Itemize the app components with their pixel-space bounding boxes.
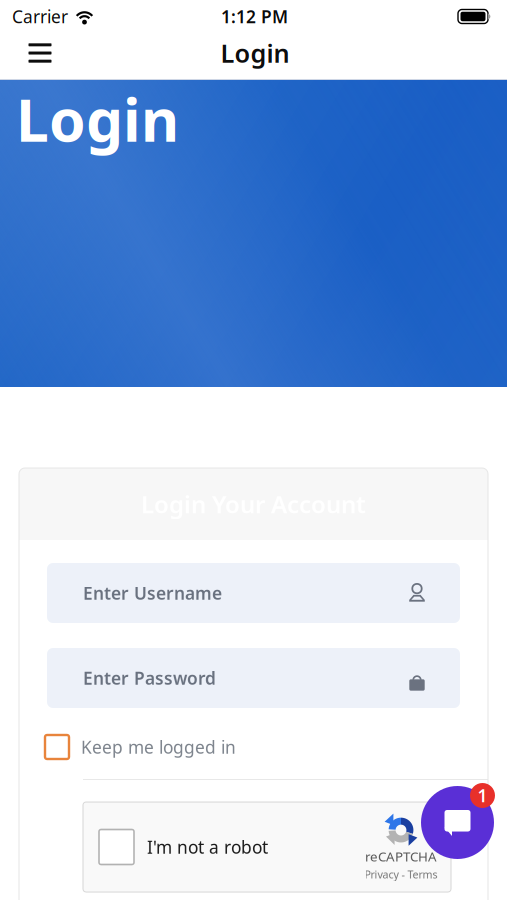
staticText: Privacy - Terms [364, 867, 437, 881]
staticText: reCAPTCHA [365, 848, 437, 865]
button[interactable]: Keep me logged in [45, 735, 236, 759]
staticText: 1:12 PM [221, 5, 288, 28]
staticText: I'm not a robot [147, 835, 268, 858]
staticText: Login [220, 36, 289, 70]
staticText: Login [16, 80, 179, 158]
button[interactable]: Menu [17, 30, 63, 76]
staticText: Enter Username [83, 581, 222, 604]
button[interactable]: Chat [419, 784, 496, 861]
staticText: Carrier [12, 5, 68, 28]
staticText: Keep me logged in [81, 735, 236, 758]
button[interactable]: I'm not a robot [99, 829, 134, 864]
staticText: Enter Password [83, 666, 216, 689]
staticText: 1 [477, 784, 487, 807]
